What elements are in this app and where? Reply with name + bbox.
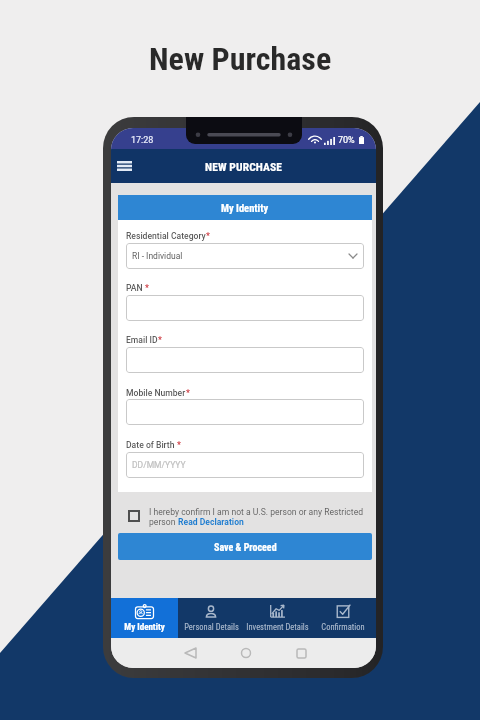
staticText: Confirmation (321, 622, 365, 632)
staticText: Residential Category (126, 231, 206, 241)
button[interactable]: Open navigation menu (114, 155, 132, 177)
staticText: * (206, 231, 210, 241)
staticText: 70% (338, 135, 355, 146)
staticText: Mobile Number (126, 388, 186, 398)
staticText: My Identity (124, 622, 165, 633)
button[interactable]: I hereby confirm I am not a U.S. person … (128, 507, 374, 527)
staticText: Date of Birth (126, 440, 177, 450)
staticText: New Purchase (149, 40, 332, 78)
button[interactable]: Confirmation (310, 598, 376, 638)
staticText: * (177, 440, 181, 450)
button[interactable]: Back (180, 643, 200, 663)
staticText: person (149, 517, 178, 527)
staticText: Personal Details (184, 622, 239, 632)
button[interactable] (126, 347, 364, 373)
staticText: PAN (126, 283, 145, 293)
staticText: * (158, 335, 162, 345)
button[interactable]: Read Declaration (178, 517, 244, 527)
staticText: RI - Individual (132, 251, 183, 261)
button[interactable] (126, 399, 364, 425)
button[interactable]: DD/MM/YYYY (126, 452, 364, 478)
button[interactable]: Save & Proceed (118, 533, 372, 560)
button[interactable]: Investment Details (244, 598, 310, 638)
button[interactable] (126, 295, 364, 321)
staticText: Email ID (126, 335, 158, 345)
staticText: * (186, 388, 190, 398)
staticText: My Identity (221, 202, 269, 214)
button[interactable]: RI - Individual (126, 243, 364, 269)
staticText: * (145, 283, 149, 293)
button[interactable]: Recent apps (291, 643, 311, 663)
staticText: DD/MM/YYYY (132, 460, 186, 470)
staticText: NEW PURCHASE (205, 160, 283, 173)
button[interactable]: Home (236, 643, 256, 663)
staticText: 17:28 (131, 135, 154, 146)
staticText: Investment Details (246, 622, 309, 632)
button[interactable]: Personal Details (178, 598, 244, 638)
button[interactable]: My Identity (111, 598, 178, 638)
staticText: I hereby confirm I am not a U.S. person … (149, 507, 364, 517)
staticText: Save & Proceed (214, 542, 277, 554)
